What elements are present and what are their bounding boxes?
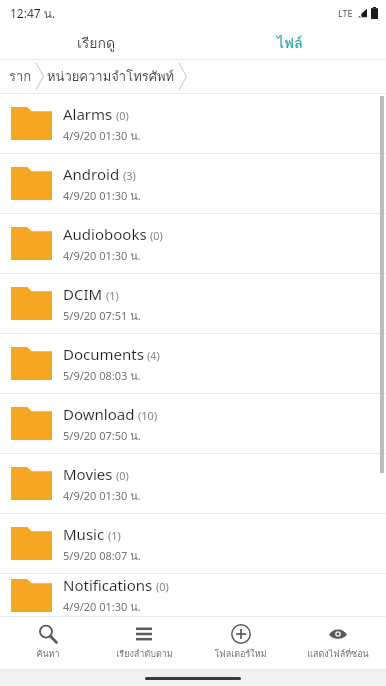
button[interactable]: DCIM (0, 274, 386, 333)
button[interactable]: Movies (0, 454, 386, 513)
button[interactable]: Notifications (0, 574, 386, 616)
button[interactable]: เรียงลำดับตาม (96, 617, 192, 669)
staticText: (4) (147, 348, 160, 363)
staticText: 4/9/20 01:30 น. (63, 127, 141, 144)
button[interactable]: ค้นหา (0, 617, 96, 669)
staticText: 5/9/20 07:51 น. (63, 307, 141, 324)
button[interactable]: Alarms (0, 94, 386, 153)
button[interactable]: Download (0, 394, 386, 453)
button[interactable]: Android (0, 154, 386, 213)
button[interactable]: Audiobooks (0, 214, 386, 273)
staticText: ราก (9, 66, 32, 87)
button[interactable]: Documents (0, 334, 386, 393)
staticText: 5/9/20 08:03 น. (63, 367, 141, 384)
staticText: Alarms (63, 104, 113, 124)
staticText: Movies (63, 464, 113, 484)
staticText: Download (63, 404, 135, 424)
staticText: 4/9/20 01:30 น. (63, 187, 141, 204)
staticText: (0) (116, 468, 129, 483)
button[interactable]: Music (0, 514, 386, 573)
staticText: 12:47 น. (10, 4, 56, 23)
staticText: Audiobooks (63, 224, 147, 244)
staticText: หน่วยความจำโทรศัพท์ (47, 66, 175, 87)
staticText: 5/9/20 07:50 น. (63, 427, 141, 444)
staticText: Documents (63, 344, 144, 364)
staticText: Music (63, 524, 105, 544)
staticText: โฟลเดอร์ใหม่ (214, 647, 267, 661)
staticText: (0) (156, 579, 169, 594)
staticText: (1) (108, 528, 121, 543)
button[interactable]: หน่วยความจำโทรศัพท์ (45, 62, 177, 91)
staticText: เรียงลำดับตาม (116, 647, 173, 661)
staticText: ค้นหา (36, 647, 60, 661)
staticText: (0) (116, 108, 129, 123)
staticText: เรียกดู (77, 32, 116, 54)
staticText: 4/9/20 01:30 น. (63, 598, 141, 615)
staticText: (1) (106, 288, 119, 303)
staticText: (3) (123, 168, 136, 183)
button[interactable]: เรียกดู (0, 26, 193, 59)
button[interactable]: โฟลเดอร์ใหม่ (192, 617, 289, 669)
staticText: Android (63, 164, 120, 184)
staticText: 5/9/20 08:07 น. (63, 547, 141, 564)
staticText: LTE (338, 7, 353, 19)
staticText: ไฟล์ (277, 32, 303, 54)
button[interactable]: แสดงไฟล์ที่ซ่อน (289, 617, 386, 669)
staticText: DCIM (63, 284, 103, 304)
staticText: แสดงไฟล์ที่ซ่อน (307, 647, 369, 661)
staticText: Notifications (63, 575, 153, 595)
staticText: 4/9/20 01:30 น. (63, 487, 141, 504)
staticText: 4/9/20 01:30 น. (63, 247, 141, 264)
staticText: (10) (138, 408, 158, 423)
button[interactable]: ไฟล์ (193, 26, 386, 59)
button[interactable]: ราก (7, 62, 34, 91)
staticText: (0) (150, 228, 163, 243)
